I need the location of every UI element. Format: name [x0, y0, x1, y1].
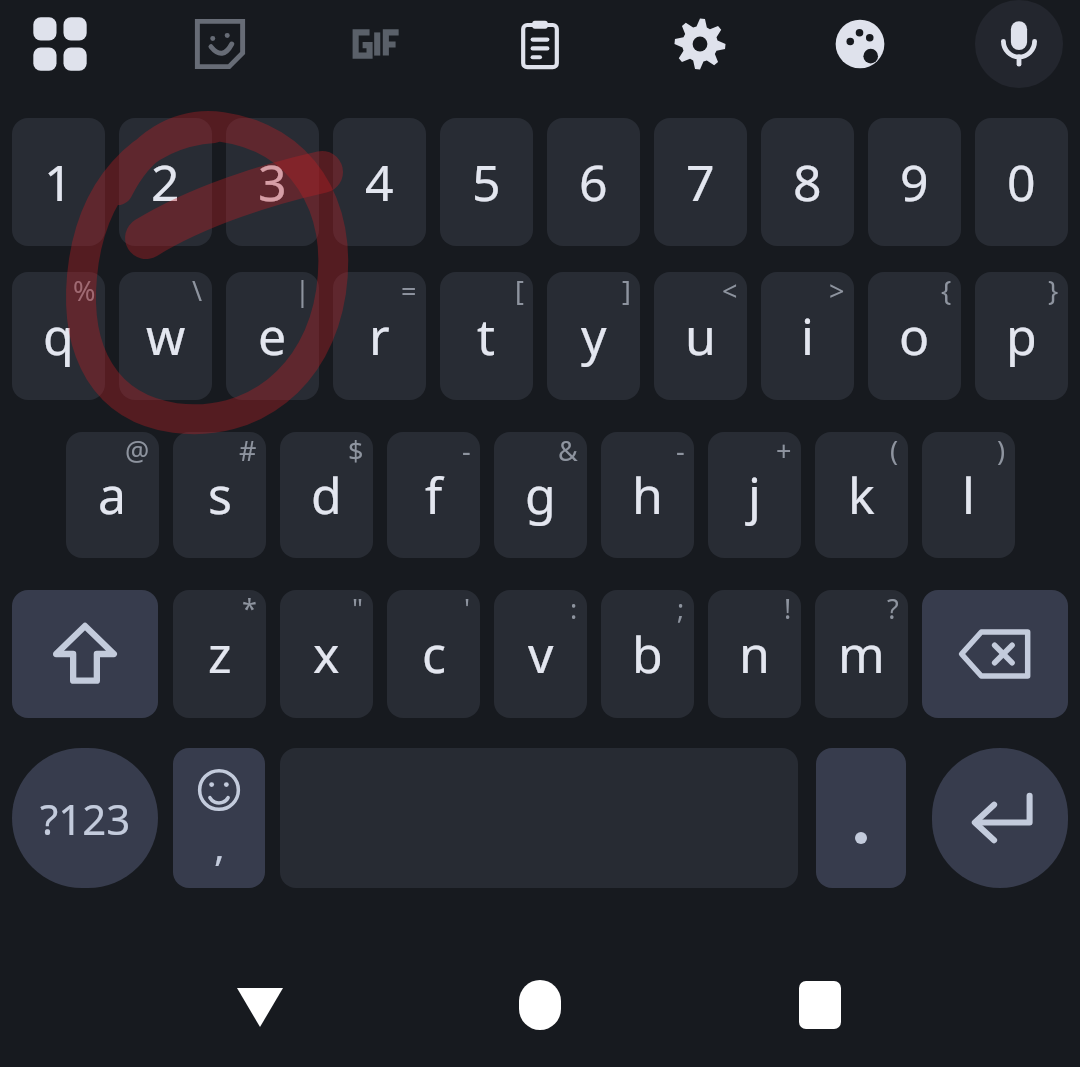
staticText: -: [676, 432, 685, 469]
button[interactable]: 0: [975, 118, 1068, 246]
button[interactable]: 1: [12, 118, 105, 246]
button[interactable]: c: [387, 590, 480, 718]
button[interactable]: q: [12, 272, 105, 400]
button[interactable]: Back: [215, 960, 305, 1050]
staticText: >: [829, 272, 845, 309]
staticText: k: [848, 461, 875, 529]
staticText: ;: [677, 590, 685, 627]
button[interactable]: p: [975, 272, 1068, 400]
staticText: $: [348, 432, 364, 469]
button[interactable]: s: [173, 432, 266, 558]
staticText: 5: [472, 148, 501, 216]
button[interactable]: ?123: [12, 748, 158, 888]
staticText: p: [1006, 302, 1037, 370]
button[interactable]: Themes: [824, 4, 896, 84]
staticText: y: [581, 302, 607, 370]
staticText: {: [941, 272, 952, 309]
staticText: 1: [44, 148, 73, 216]
button[interactable]: Recents: [775, 960, 865, 1050]
button[interactable]: u: [654, 272, 747, 400]
button[interactable]: Clipboard: [504, 4, 576, 84]
staticText: (: [890, 432, 899, 469]
staticText: 7: [686, 148, 715, 216]
staticText: 3: [258, 148, 287, 216]
staticText: w: [146, 302, 186, 370]
staticText: j: [748, 461, 761, 529]
button[interactable]: i: [761, 272, 854, 400]
staticText: @: [125, 432, 150, 469]
button[interactable]: 9: [868, 118, 961, 246]
button[interactable]: a: [66, 432, 159, 558]
button[interactable]: v: [494, 590, 587, 718]
staticText: ,: [214, 818, 225, 872]
staticText: h: [632, 461, 663, 529]
button[interactable]: 4: [333, 118, 426, 246]
staticText: 9: [900, 148, 929, 216]
staticText: l: [962, 461, 975, 529]
button[interactable]: Period: [816, 748, 906, 888]
staticText: q: [43, 302, 74, 370]
staticText: 6: [579, 148, 608, 216]
staticText: v: [528, 620, 554, 688]
staticText: ?123: [40, 790, 131, 847]
staticText: *: [242, 590, 257, 627]
staticText: r: [369, 302, 390, 370]
button[interactable]: z: [173, 590, 266, 718]
staticText: &: [558, 432, 578, 469]
button[interactable]: w: [119, 272, 212, 400]
button[interactable]: r: [333, 272, 426, 400]
button[interactable]: o: [868, 272, 961, 400]
button[interactable]: x: [280, 590, 373, 718]
staticText: 8: [793, 148, 822, 216]
button[interactable]: Voice input: [975, 0, 1063, 88]
staticText: \: [192, 272, 203, 309]
button[interactable]: b: [601, 590, 694, 718]
staticText: -: [462, 432, 471, 469]
button[interactable]: t: [440, 272, 533, 400]
button[interactable]: Apps: [24, 4, 96, 84]
staticText: ): [997, 432, 1006, 469]
staticText: #: [239, 432, 257, 469]
button[interactable]: 8: [761, 118, 854, 246]
button[interactable]: n: [708, 590, 801, 718]
button[interactable]: f: [387, 432, 480, 558]
staticText: b: [632, 620, 663, 688]
button[interactable]: d: [280, 432, 373, 558]
staticText: ?: [887, 590, 899, 627]
staticText: c: [422, 620, 446, 688]
staticText: e: [258, 302, 287, 370]
staticText: f: [425, 461, 443, 529]
staticText: |: [295, 272, 310, 309]
button[interactable]: y: [547, 272, 640, 400]
button[interactable]: 2: [119, 118, 212, 246]
button[interactable]: Stickers: [184, 4, 256, 84]
button[interactable]: 3: [226, 118, 319, 246]
button[interactable]: Backspace: [922, 590, 1068, 718]
staticText: m: [838, 620, 885, 688]
button[interactable]: Shift: [12, 590, 158, 718]
staticText: i: [801, 302, 814, 370]
button[interactable]: l: [922, 432, 1015, 558]
button[interactable]: e: [226, 272, 319, 400]
staticText: 4: [365, 148, 394, 216]
button[interactable]: h: [601, 432, 694, 558]
button[interactable]: m: [815, 590, 908, 718]
staticText: 2: [151, 148, 180, 216]
button[interactable]: GIF: [344, 4, 416, 84]
button[interactable]: g: [494, 432, 587, 558]
staticText: d: [311, 461, 342, 529]
button[interactable]: 6: [547, 118, 640, 246]
button[interactable]: Settings: [664, 4, 736, 84]
staticText: +: [776, 432, 792, 469]
button[interactable]: j: [708, 432, 801, 558]
staticText: !: [784, 590, 792, 627]
button[interactable]: Home: [495, 960, 585, 1050]
button[interactable]: Enter: [932, 748, 1068, 888]
staticText: o: [899, 302, 930, 370]
button[interactable]: 5: [440, 118, 533, 246]
staticText: }: [1048, 272, 1059, 309]
button[interactable]: k: [815, 432, 908, 558]
button[interactable]: Emoji: [173, 748, 265, 888]
button[interactable]: 7: [654, 118, 747, 246]
